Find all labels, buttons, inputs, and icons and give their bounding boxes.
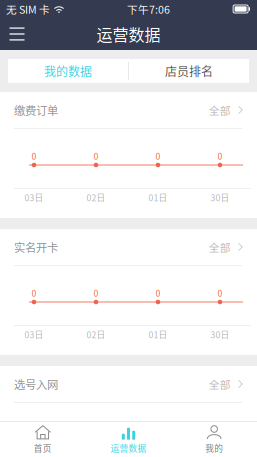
staticText: 下午7:06: [127, 1, 170, 17]
staticText: 0: [31, 287, 36, 299]
staticText: 0: [155, 150, 160, 162]
staticText: 0: [93, 287, 98, 299]
staticText: 店员排名: [165, 62, 213, 80]
staticText: 全部: [209, 376, 231, 392]
button[interactable]: 缴费订单: [0, 92, 257, 128]
staticText: 0: [155, 287, 160, 299]
staticText: 0: [31, 150, 36, 162]
staticText: 0: [217, 150, 222, 162]
staticText: 无 SIM 卡: [6, 1, 50, 17]
staticText: 运营数据: [96, 22, 160, 46]
button[interactable]: 首页: [0, 422, 86, 457]
button[interactable]: 我的: [171, 422, 257, 457]
staticText: 30日: [210, 328, 229, 341]
staticText: 全部: [209, 102, 231, 118]
button[interactable]: 我的数据: [8, 59, 128, 83]
staticText: 03日: [24, 328, 43, 341]
staticText: 03日: [24, 191, 43, 204]
button[interactable]: 实名开卡: [0, 229, 257, 265]
staticText: 02日: [86, 191, 105, 204]
button[interactable]: Menu: [2, 18, 32, 50]
button[interactable]: 店员排名: [129, 59, 249, 83]
staticText: 选号入网: [14, 376, 58, 392]
button[interactable]: 运营数据: [86, 422, 171, 457]
staticText: 缴费订单: [14, 102, 58, 118]
staticText: 首页: [34, 442, 52, 454]
button[interactable]: 选号入网: [0, 366, 257, 402]
staticText: 实名开卡: [14, 239, 58, 255]
staticText: 01日: [148, 191, 167, 204]
staticText: 0: [217, 287, 222, 299]
staticText: 我的: [205, 442, 223, 454]
staticText: 30日: [210, 191, 229, 204]
staticText: 我的数据: [44, 62, 92, 80]
staticText: 02日: [86, 328, 105, 341]
staticText: 全部: [209, 239, 231, 255]
staticText: 0: [93, 150, 98, 162]
staticText: 运营数据: [110, 442, 146, 454]
staticText: 01日: [148, 328, 167, 341]
